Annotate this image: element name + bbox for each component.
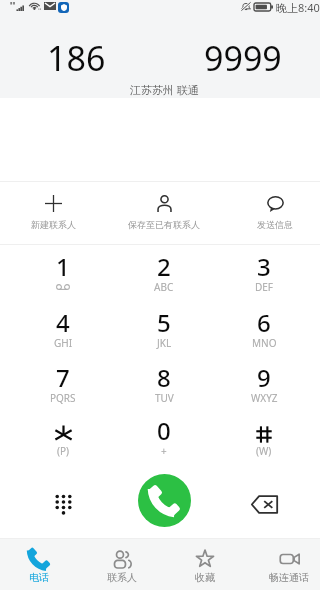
button[interactable]: Call <box>138 474 191 527</box>
button[interactable]: 9 <box>231 361 297 415</box>
button[interactable]: (W) <box>231 414 297 468</box>
staticText: 0 <box>157 414 171 447</box>
staticText: (P) <box>57 444 70 458</box>
staticText: 江苏苏州 联通 <box>130 82 199 97</box>
button[interactable]: 5 <box>131 306 197 360</box>
button[interactable]: 0 <box>131 414 197 468</box>
staticText: 发送信息 <box>257 219 293 230</box>
staticText: JKL <box>157 336 172 350</box>
staticText: 186 <box>47 35 106 81</box>
staticText: GHI <box>54 336 73 350</box>
staticText: 4 <box>56 306 70 339</box>
button[interactable]: 新建联系人 <box>5 188 101 230</box>
staticText: 联系人 <box>107 571 137 584</box>
staticText: WXYZ <box>251 391 278 405</box>
staticText: 6 <box>257 306 271 339</box>
button[interactable]: (P) <box>30 414 96 468</box>
staticText: 3 <box>257 250 271 283</box>
button[interactable]: 7 <box>30 361 96 415</box>
button[interactable]: 3 <box>231 250 297 304</box>
staticText: 8 <box>157 361 171 394</box>
staticText: MNO <box>252 336 277 350</box>
staticText: 收藏 <box>195 571 215 584</box>
button[interactable]: Backspace <box>238 478 290 530</box>
staticText: 2 <box>157 250 171 283</box>
staticText: PQRS <box>50 391 76 405</box>
staticText: + <box>161 444 167 458</box>
button[interactable]: 8 <box>131 361 197 415</box>
button[interactable]: 电话 <box>0 539 79 590</box>
button[interactable]: 畅连通话 <box>249 539 320 590</box>
button[interactable]: 联系人 <box>82 539 162 590</box>
staticText: 保存至已有联系人 <box>128 219 200 230</box>
staticText: 新建联系人 <box>31 219 76 230</box>
button[interactable]: 发送信息 <box>227 188 320 230</box>
button[interactable]: 4 <box>30 306 96 360</box>
button[interactable]: 2 <box>131 250 197 304</box>
staticText: 晚上8:40 <box>276 0 320 15</box>
staticText: 畅连通话 <box>269 571 309 584</box>
staticText: 9999 <box>204 35 282 81</box>
staticText: DEF <box>255 280 274 294</box>
staticText: (W) <box>256 444 272 458</box>
staticText: 5 <box>157 306 171 339</box>
button[interactable]: 6 <box>231 306 297 360</box>
staticText: 1 <box>56 250 70 283</box>
button[interactable]: 收藏 <box>165 539 245 590</box>
staticText: ABC <box>154 280 174 294</box>
button[interactable]: 保存至已有联系人 <box>116 188 212 230</box>
button[interactable]: Keypad <box>37 478 89 530</box>
staticText: 9 <box>257 361 271 394</box>
staticText: TUV <box>155 391 174 405</box>
button[interactable]: 1 <box>30 250 96 304</box>
staticText: 电话 <box>29 571 49 584</box>
staticText: 7 <box>56 361 70 394</box>
